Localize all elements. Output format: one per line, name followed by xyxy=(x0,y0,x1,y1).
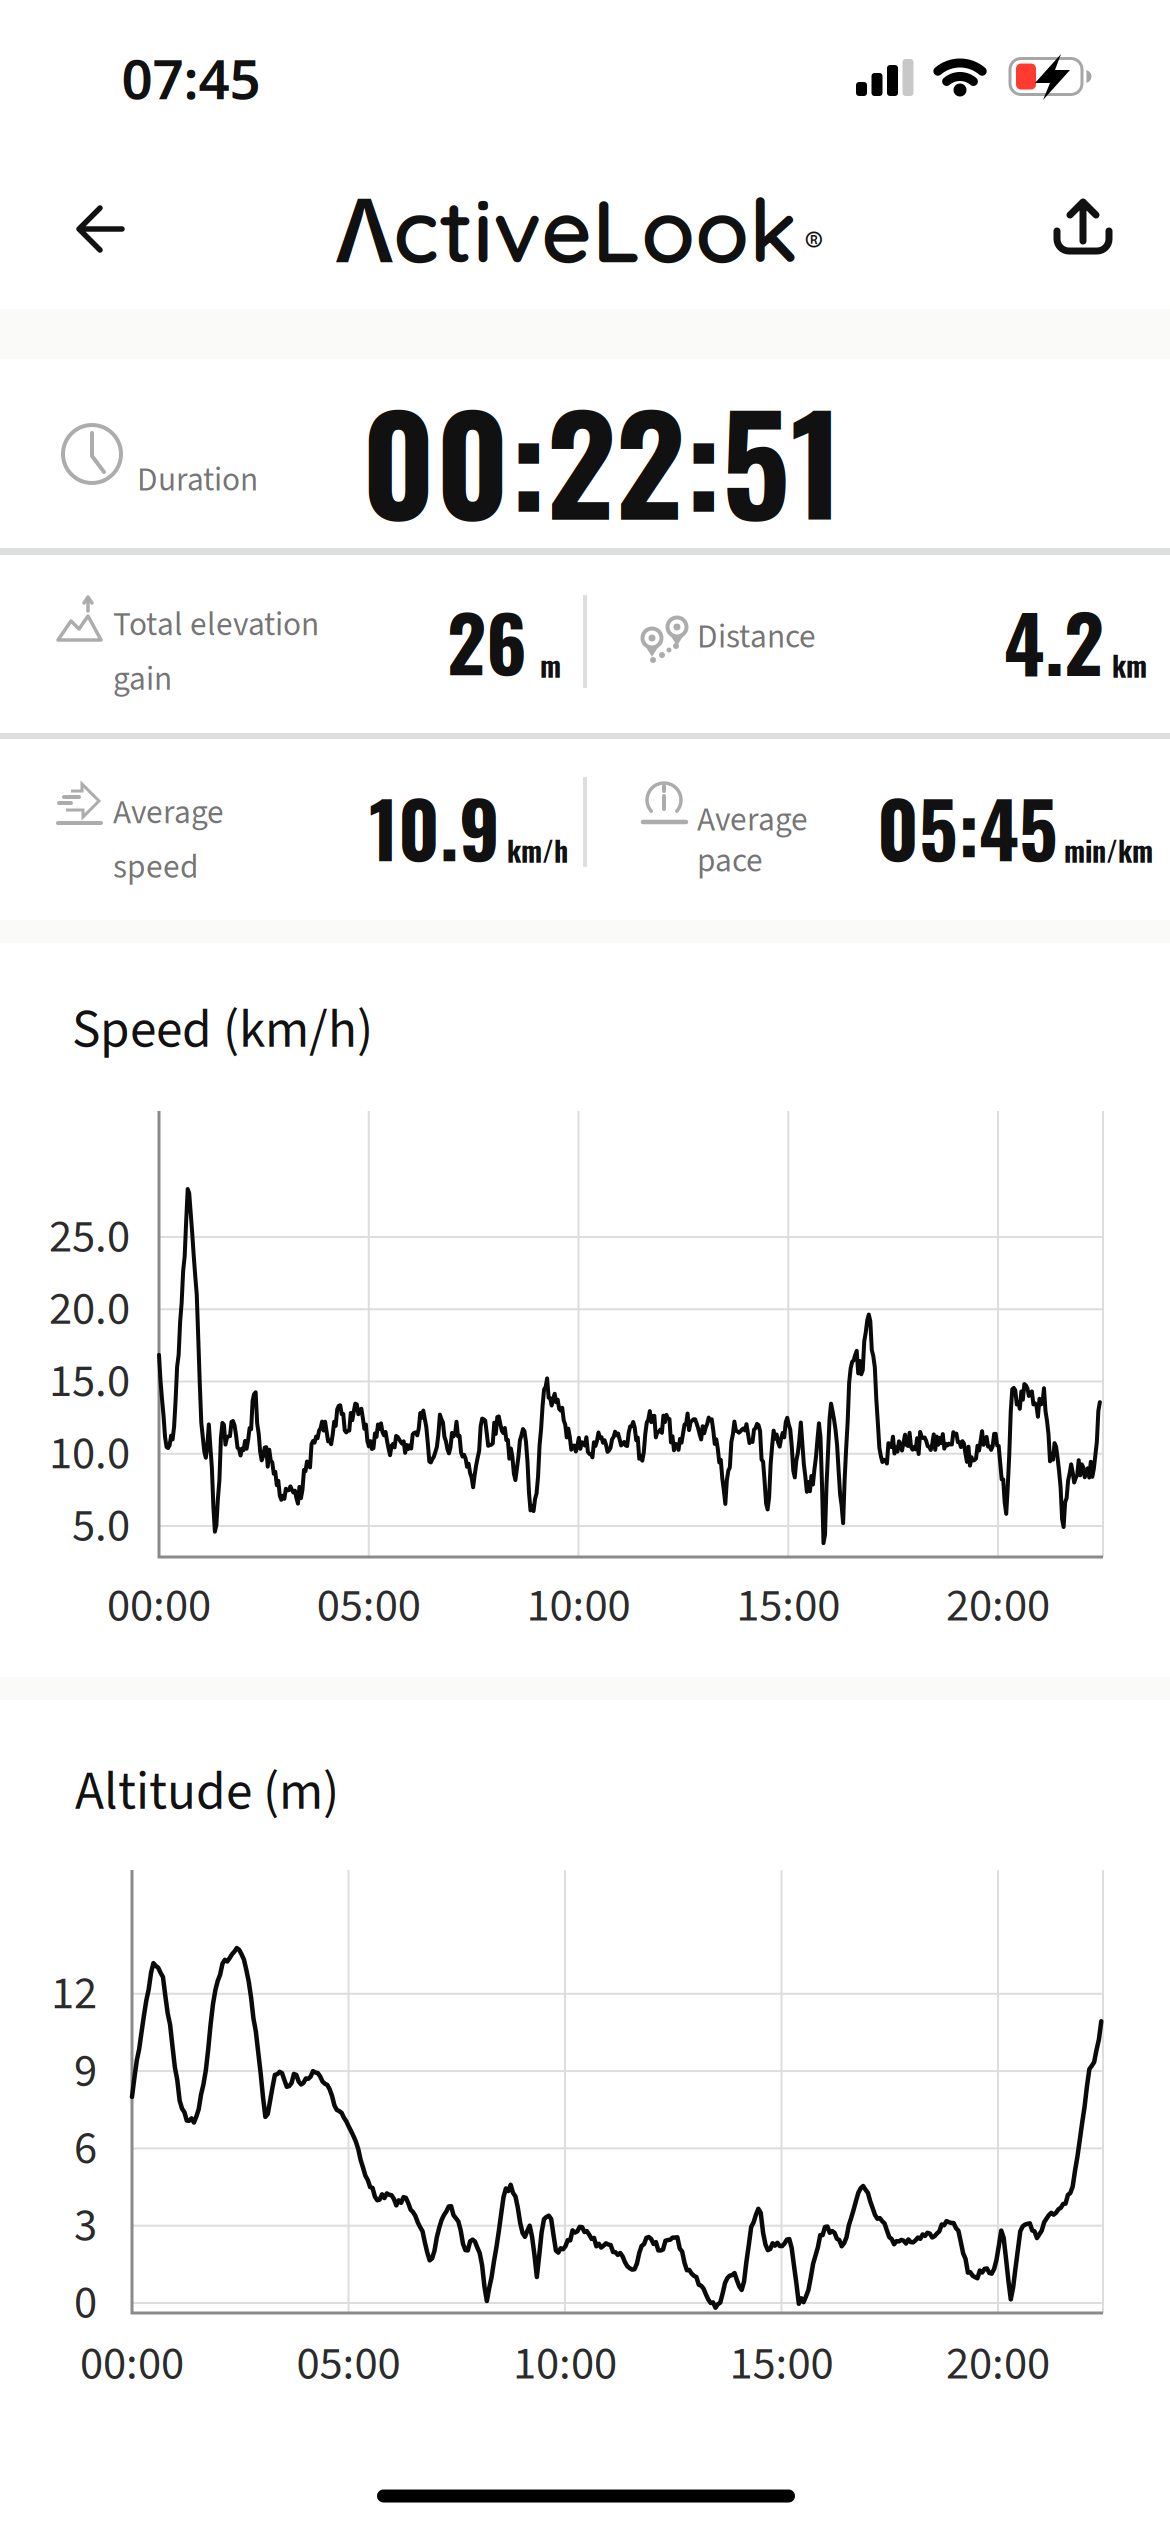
staticText: 00:00 xyxy=(107,1573,211,1639)
staticText: 15:00 xyxy=(736,1573,840,1639)
staticText: 05:00 xyxy=(296,2331,400,2397)
staticText: 10.9 xyxy=(369,771,500,883)
staticText: 10.0 xyxy=(49,1420,130,1487)
staticText: gain xyxy=(113,655,172,703)
staticText: 12 xyxy=(51,1960,97,2027)
staticText: 5.0 xyxy=(72,1493,130,1559)
staticText: 15:00 xyxy=(729,2331,833,2397)
staticText: ΛctiveLook xyxy=(336,168,798,288)
staticText: 20:00 xyxy=(946,2331,1050,2397)
staticText: 10:00 xyxy=(513,2331,617,2397)
button[interactable] xyxy=(1046,189,1120,263)
staticText: 00:00 xyxy=(80,2331,184,2397)
staticText: 15.0 xyxy=(49,1348,130,1415)
staticText: Total elevation xyxy=(113,601,319,648)
staticText: pace xyxy=(697,837,763,885)
button[interactable] xyxy=(65,193,135,263)
staticText: 05:45 xyxy=(877,771,1058,883)
staticText: 3 xyxy=(74,2192,97,2259)
staticText: Altitude (m) xyxy=(75,1754,339,1830)
staticText: 20.0 xyxy=(49,1276,130,1342)
staticText: 0 xyxy=(74,2270,97,2336)
staticText: 07:45 xyxy=(121,42,260,114)
staticText: 20:00 xyxy=(946,1573,1050,1639)
staticText: km xyxy=(1112,644,1147,686)
staticText: ® xyxy=(804,220,823,265)
staticText: km/h xyxy=(507,829,568,871)
staticText: Average xyxy=(697,796,808,844)
staticText: min/km xyxy=(1064,829,1153,871)
staticText: Duration xyxy=(137,456,258,504)
staticText: Average xyxy=(113,789,224,836)
staticText: 26 xyxy=(447,585,527,697)
staticText: Distance xyxy=(697,613,816,661)
staticText: 00:22:51 xyxy=(361,359,842,559)
staticText: speed xyxy=(113,843,199,891)
staticText: 4.2 xyxy=(1004,584,1104,698)
staticText: 6 xyxy=(74,2115,97,2182)
staticText: 25.0 xyxy=(49,1204,130,1270)
staticText: 10:00 xyxy=(526,1573,630,1639)
staticText: 05:00 xyxy=(317,1573,421,1639)
staticText: 9 xyxy=(74,2038,97,2104)
staticText: m xyxy=(540,644,561,686)
staticText: Speed (km/h) xyxy=(72,992,373,1068)
